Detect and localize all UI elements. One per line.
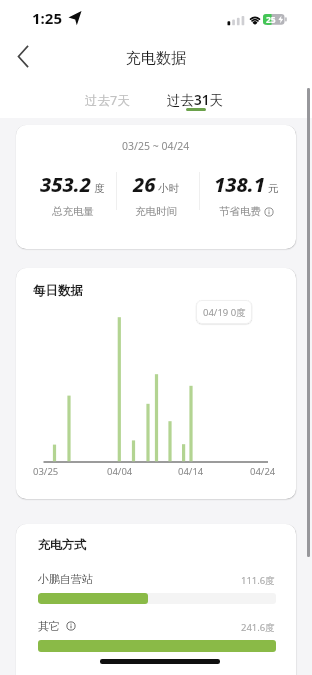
staticText: 25 [266, 14, 276, 25]
staticText: 充电数据 [126, 49, 186, 68]
staticText: 26 [133, 171, 156, 198]
staticText: 其它 [38, 619, 60, 633]
staticText: 充电时间 [135, 205, 177, 218]
staticText: 1:25 [32, 8, 62, 27]
button[interactable]: 过去7天 [78, 88, 136, 112]
staticText: 04/19 0度 [203, 306, 246, 319]
staticText: 节省电费 [219, 205, 261, 218]
staticText: 每日数据 [33, 283, 83, 298]
staticText: 04/24 [250, 465, 276, 478]
staticText: 03/25 ~ 04/24 [122, 139, 190, 153]
staticText: 度 [94, 182, 105, 195]
staticText: 过去31天 [167, 91, 223, 109]
button[interactable]: 其它 [38, 618, 76, 633]
staticText: 353.2 [40, 171, 92, 198]
staticText: 总充电量 [52, 205, 94, 218]
staticText: 241.6度 [241, 621, 275, 634]
staticText: 充电方式 [38, 537, 86, 552]
button[interactable] [8, 44, 40, 72]
button[interactable] [264, 207, 274, 217]
staticText: 03/25 [33, 465, 59, 478]
staticText: 04/14 [178, 465, 204, 478]
staticText: 小鹏自营站 [38, 572, 93, 586]
staticText: 111.6度 [241, 574, 275, 587]
staticText: 138.1 [214, 171, 266, 198]
staticText: 04/04 [107, 465, 133, 478]
staticText: 过去7天 [85, 92, 130, 109]
staticText: 元 [268, 182, 279, 195]
staticText: 小时 [158, 182, 179, 195]
button[interactable]: 过去31天 [160, 88, 230, 112]
